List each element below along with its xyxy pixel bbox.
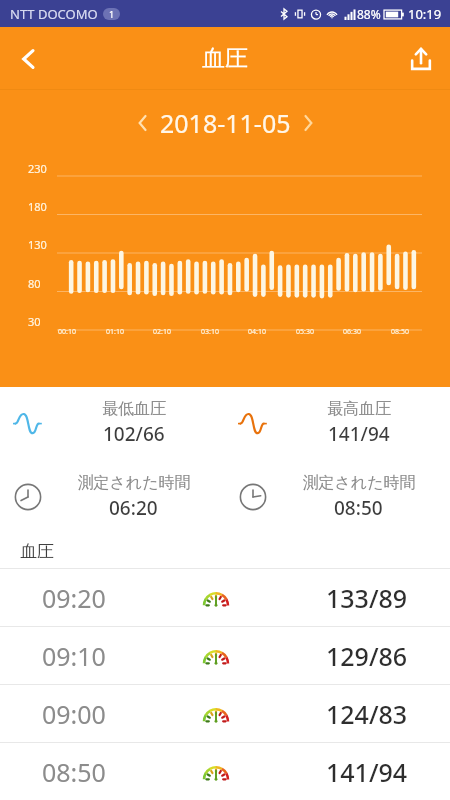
staticText: 80 bbox=[28, 276, 41, 291]
staticText: 測定された時間 bbox=[77, 473, 191, 493]
staticText: 2018-11-05 bbox=[160, 106, 291, 140]
staticText: 08:50 bbox=[42, 755, 106, 789]
staticText: 08:50 bbox=[391, 327, 409, 337]
staticText: 09:20 bbox=[42, 581, 106, 615]
button[interactable]: Next day bbox=[291, 106, 325, 140]
staticText: 230 bbox=[28, 161, 47, 176]
staticText: 09:10 bbox=[42, 639, 106, 673]
button[interactable]: 09:00 bbox=[0, 685, 450, 742]
staticText: 130 bbox=[28, 237, 47, 252]
button[interactable]: 最低血圧 bbox=[0, 387, 225, 459]
staticText: 05:30 bbox=[296, 327, 314, 337]
staticText: 09:00 bbox=[42, 697, 106, 731]
staticText: 141/94 bbox=[328, 421, 390, 447]
button[interactable]: Back bbox=[0, 30, 58, 88]
staticText: 133/89 bbox=[326, 581, 408, 615]
staticText: 180 bbox=[28, 199, 47, 214]
staticText: 最高血圧 bbox=[327, 399, 391, 419]
staticText: 06:30 bbox=[343, 327, 361, 337]
staticText: NTT DOCOMO bbox=[10, 5, 98, 23]
staticText: 1 bbox=[109, 8, 115, 20]
staticText: 30 bbox=[28, 314, 41, 329]
staticText: 08:50 bbox=[334, 495, 383, 521]
staticText: 血圧 bbox=[20, 541, 54, 562]
button[interactable]: 09:20 bbox=[0, 569, 450, 626]
staticText: 血圧 bbox=[202, 44, 248, 73]
staticText: 141/94 bbox=[326, 755, 408, 789]
staticText: 04:10 bbox=[248, 327, 266, 337]
staticText: 124/83 bbox=[326, 697, 408, 731]
staticText: 129/86 bbox=[326, 639, 408, 673]
staticText: 10:19 bbox=[408, 5, 442, 23]
button[interactable]: 最高血圧 bbox=[225, 387, 450, 459]
staticText: 88% bbox=[357, 6, 381, 22]
button[interactable]: 09:10 bbox=[0, 627, 450, 684]
button[interactable]: 08:50 bbox=[0, 743, 450, 800]
staticText: 03:10 bbox=[201, 327, 219, 337]
button[interactable]: Previous day bbox=[126, 106, 160, 140]
staticText: 測定された時間 bbox=[302, 473, 416, 493]
button[interactable]: Share bbox=[392, 30, 450, 88]
staticText: 最低血圧 bbox=[102, 399, 166, 419]
staticText: 01:10 bbox=[106, 327, 124, 337]
button[interactable]: 測定された時間 bbox=[0, 459, 225, 535]
staticText: 02:10 bbox=[153, 327, 171, 337]
staticText: 102/66 bbox=[103, 421, 165, 447]
button[interactable]: 測定された時間 bbox=[225, 459, 450, 535]
staticText: 06:20 bbox=[109, 495, 158, 521]
staticText: 00:10 bbox=[58, 327, 76, 337]
